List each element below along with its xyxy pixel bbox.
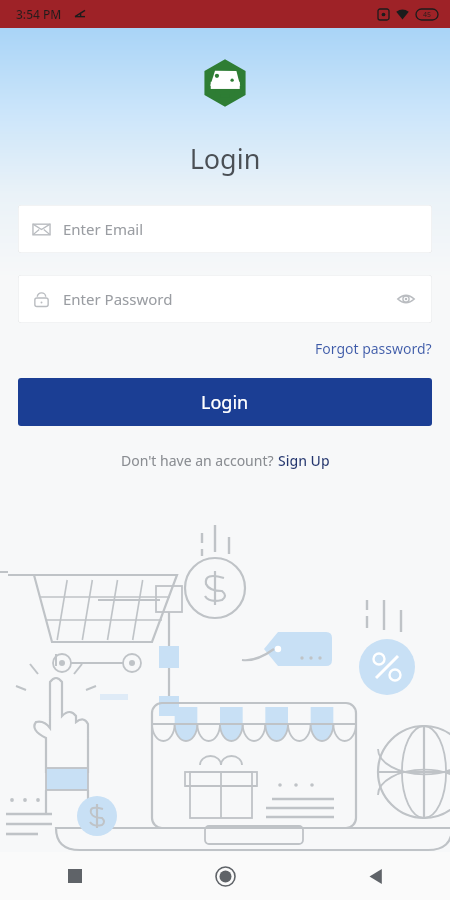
- button[interactable]: Sign Up: [278, 448, 330, 473]
- staticText: Don't have an account?: [121, 451, 278, 470]
- staticText: Login: [0, 140, 450, 177]
- button[interactable]: Login: [18, 378, 432, 426]
- staticText: Login: [201, 390, 249, 415]
- staticText: Forgot password?: [315, 339, 432, 358]
- button[interactable]: Show password: [392, 285, 420, 313]
- button[interactable]: Recents: [0, 852, 150, 900]
- button[interactable]: Enter Password: [18, 275, 432, 323]
- staticText: Enter Email: [63, 219, 144, 239]
- staticText: Enter Password: [63, 289, 173, 309]
- button[interactable]: Forgot password?: [313, 335, 434, 362]
- staticText: 45: [423, 10, 432, 20]
- button[interactable]: Enter Email: [18, 205, 432, 253]
- staticText: Sign Up: [278, 451, 330, 470]
- button[interactable]: Back: [300, 852, 450, 900]
- button[interactable]: Home: [150, 852, 300, 900]
- staticText: 3:54 PM: [16, 6, 62, 22]
